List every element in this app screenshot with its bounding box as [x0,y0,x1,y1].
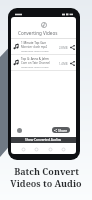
button[interactable]: Tab 4 [60,146,67,153]
staticText: Share [58,128,68,133]
staticText: made with love in India [21,65,49,68]
staticText: 1 Minute Top Gun Maverick Fight [21,41,58,45]
staticText: 1.4 MB [59,62,68,66]
button[interactable]: Tab 3 [47,146,54,153]
staticText: Monster clash mp4 [21,45,47,49]
button[interactable]: Tab 1 [20,146,27,153]
button[interactable]: Top G: Anna & Jahm Talking [11,55,76,70]
staticText: 2.8 MB [59,46,68,50]
staticText: Converting Videos [18,30,58,36]
button[interactable]: Share [52,127,70,133]
button[interactable]: Share [69,44,75,50]
staticText: Top G: Anna & Jahm Talking [21,57,58,61]
button[interactable]: Select all [17,128,22,133]
staticText: made with love in India [21,49,49,52]
button[interactable]: Tab 2 [33,146,40,153]
staticText: Com on Tate Channel Content [21,61,58,65]
button[interactable]: App logo [41,22,47,28]
button[interactable]: Show Converted Audios [11,137,76,143]
button[interactable]: 1 Minute Top Gun Maverick Fight [11,39,76,54]
staticText: Show Converted Audios [25,138,62,142]
staticText: Batch Convert [14,165,79,177]
button[interactable]: Share [69,60,75,66]
staticText: Videos to Audio [10,177,82,189]
